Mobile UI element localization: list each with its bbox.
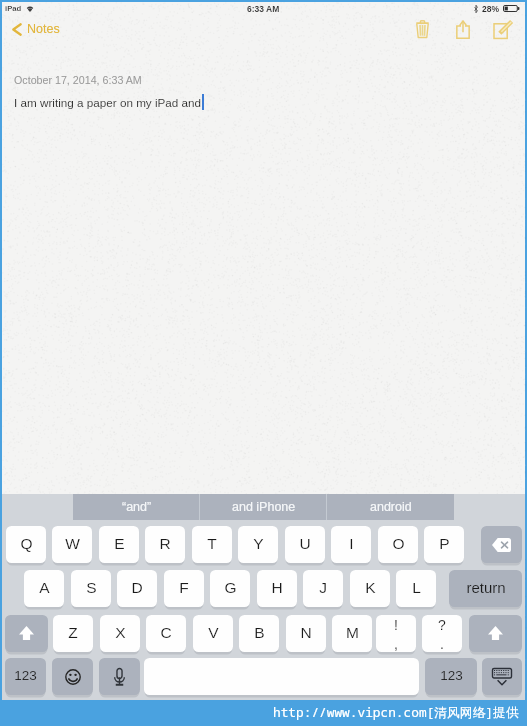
staticText: October 17, 2014, 6:33 AM — [14, 74, 142, 86]
button[interactable]: P — [424, 526, 464, 563]
button[interactable]: Notes — [12, 13, 60, 45]
button[interactable]: N — [286, 615, 326, 652]
staticText: X — [115, 624, 126, 641]
button[interactable]: and iPhone — [200, 494, 327, 520]
button[interactable]: Q — [6, 526, 46, 563]
staticText: Q — [20, 535, 33, 552]
staticText: Y — [253, 535, 264, 552]
staticText: W — [65, 535, 80, 552]
button[interactable]: R — [145, 526, 185, 563]
button[interactable]: D — [117, 570, 157, 607]
button[interactable]: Z — [53, 615, 93, 652]
staticText: I am writing a paper on my iPad and — [14, 96, 202, 109]
staticText: , — [394, 636, 398, 652]
button[interactable]: Backspace — [481, 526, 522, 563]
button[interactable]: Delete note — [406, 13, 439, 45]
staticText: 28% — [482, 4, 500, 13]
staticText: F — [179, 579, 189, 596]
button[interactable]: New note — [486, 13, 519, 45]
button[interactable]: W — [52, 526, 92, 563]
button[interactable]: Shift — [469, 615, 522, 652]
staticText: . — [440, 636, 444, 652]
button[interactable]: 123 — [425, 658, 477, 695]
staticText: S — [86, 579, 97, 596]
button[interactable]: Dictation — [99, 658, 140, 695]
staticText: H — [271, 579, 283, 596]
button[interactable]: L — [396, 570, 436, 607]
button[interactable]: C — [146, 615, 186, 652]
staticText: J — [319, 579, 327, 596]
staticText: ? — [438, 617, 446, 633]
staticText: R — [159, 535, 171, 552]
staticText: K — [365, 579, 376, 596]
staticText: Notes — [27, 22, 60, 36]
button[interactable]: Y — [238, 526, 278, 563]
button[interactable]: I — [331, 526, 371, 563]
button[interactable]: G — [210, 570, 250, 607]
staticText: C — [160, 624, 172, 641]
staticText: iPad — [5, 4, 22, 13]
button[interactable]: U — [285, 526, 325, 563]
staticText: D — [131, 579, 143, 596]
staticText: O — [392, 535, 405, 552]
button[interactable]: T — [192, 526, 232, 563]
staticText: android — [370, 500, 412, 514]
button[interactable]: X — [100, 615, 140, 652]
staticText: E — [114, 535, 125, 552]
staticText: and iPhone — [232, 500, 296, 514]
button[interactable]: ? — [422, 615, 462, 652]
staticText: B — [254, 624, 265, 641]
button[interactable]: S — [71, 570, 111, 607]
button[interactable]: ! — [376, 615, 416, 652]
button[interactable]: Share — [446, 13, 479, 45]
staticText: 6:33 AM — [247, 4, 280, 13]
staticText: 123 — [440, 668, 463, 683]
button[interactable]: android — [327, 494, 454, 520]
staticText: I — [349, 535, 354, 552]
button[interactable]: Emoji — [52, 658, 93, 695]
staticText: “and” — [122, 500, 152, 514]
button[interactable]: K — [350, 570, 390, 607]
staticText: ! — [394, 617, 398, 633]
button[interactable]: J — [303, 570, 343, 607]
button[interactable]: F — [164, 570, 204, 607]
button[interactable]: A — [24, 570, 64, 607]
staticText: N — [300, 624, 312, 641]
staticText: M — [346, 624, 359, 641]
staticText: G — [224, 579, 237, 596]
staticText: L — [412, 579, 421, 596]
button[interactable]: O — [378, 526, 418, 563]
staticText: U — [299, 535, 311, 552]
staticText: http://www.vipcn.com[清风网络]提供 — [273, 703, 519, 720]
staticText: Z — [68, 624, 78, 641]
staticText: 123 — [14, 668, 37, 683]
staticText: A — [39, 579, 50, 596]
button[interactable]: B — [239, 615, 279, 652]
button[interactable]: Hide keyboard — [482, 658, 522, 695]
button[interactable]: 123 — [5, 658, 46, 695]
button[interactable]: M — [332, 615, 372, 652]
staticText: T — [207, 535, 217, 552]
button[interactable]: V — [193, 615, 233, 652]
button[interactable]: “and” — [73, 494, 200, 520]
staticText: V — [208, 624, 219, 641]
button[interactable]: E — [99, 526, 139, 563]
button[interactable]: H — [257, 570, 297, 607]
staticText: return — [466, 579, 506, 596]
staticText: P — [439, 535, 450, 552]
button[interactable]: return — [449, 570, 522, 607]
button[interactable]: Shift — [5, 615, 48, 652]
